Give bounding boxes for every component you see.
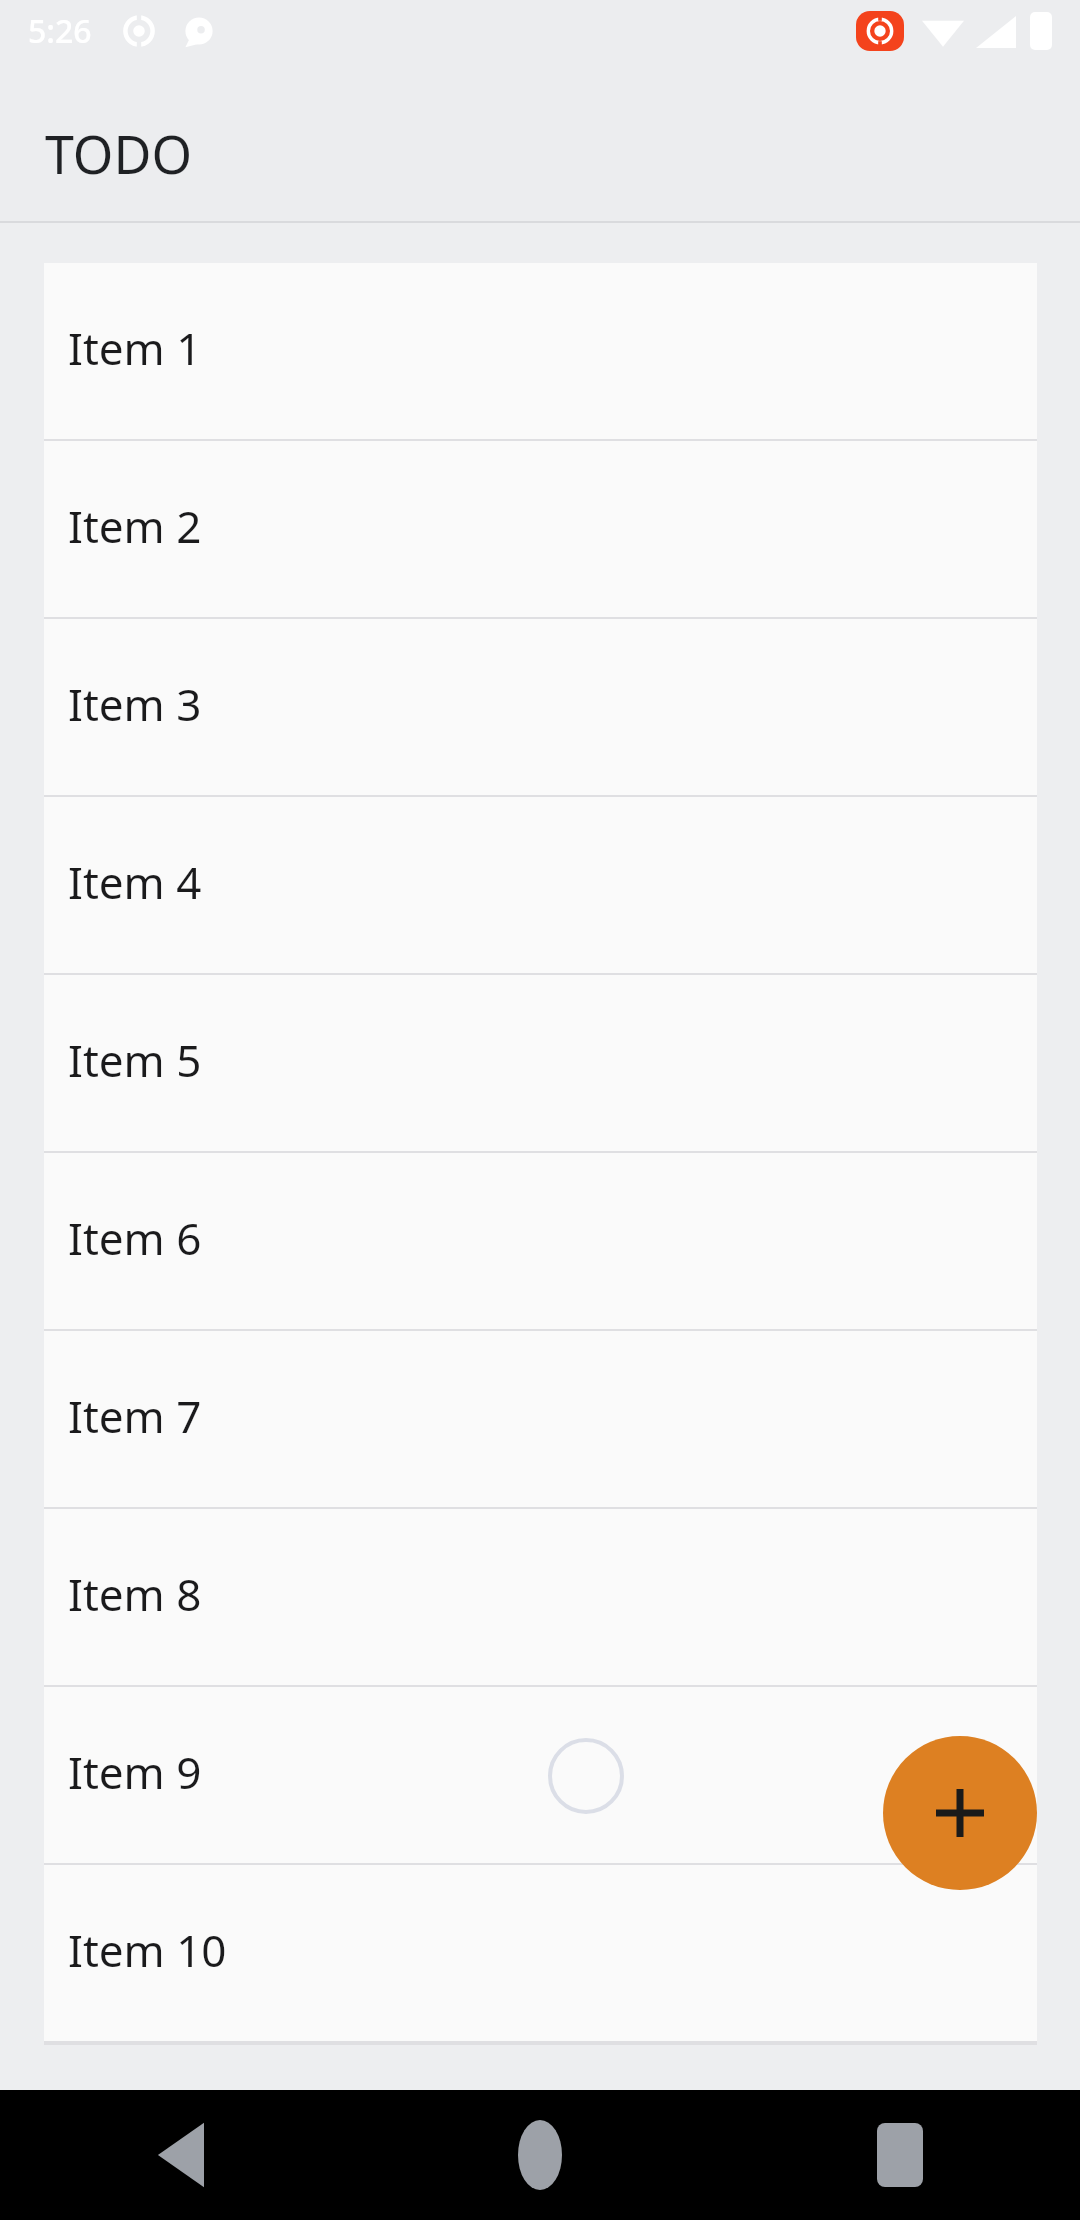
button[interactable]: Add item [883, 1736, 1037, 1890]
staticText: Item 8 [68, 1564, 202, 1624]
button[interactable]: Home [360, 2090, 720, 2220]
button[interactable]: Recent apps [720, 2090, 1080, 2220]
button[interactable]: Item 7 [44, 1331, 1037, 1509]
staticText: 5:26 [28, 9, 92, 53]
staticText: Item 9 [68, 1742, 202, 1802]
button[interactable]: Item 10 [44, 1865, 1037, 2043]
staticText: Item 4 [68, 852, 202, 912]
button[interactable]: Item 2 [44, 441, 1037, 619]
staticText: Item 2 [68, 496, 202, 556]
button[interactable]: Item 1 [44, 263, 1037, 441]
button[interactable]: Item 6 [44, 1153, 1037, 1331]
button[interactable]: Back [0, 2090, 360, 2220]
staticText: Item 3 [68, 674, 202, 734]
staticText: Item 5 [68, 1030, 202, 1090]
staticText: Item 7 [68, 1386, 202, 1446]
staticText: Item 10 [68, 1920, 227, 1980]
staticText: TODO [45, 118, 193, 189]
button[interactable]: Item 9 [44, 1687, 1037, 1865]
staticText: Item 1 [68, 318, 202, 378]
button[interactable]: Item 3 [44, 619, 1037, 797]
button[interactable]: Item 4 [44, 797, 1037, 975]
button[interactable]: Item 5 [44, 975, 1037, 1153]
button[interactable]: Item 8 [44, 1509, 1037, 1687]
staticText: Item 6 [68, 1208, 202, 1268]
